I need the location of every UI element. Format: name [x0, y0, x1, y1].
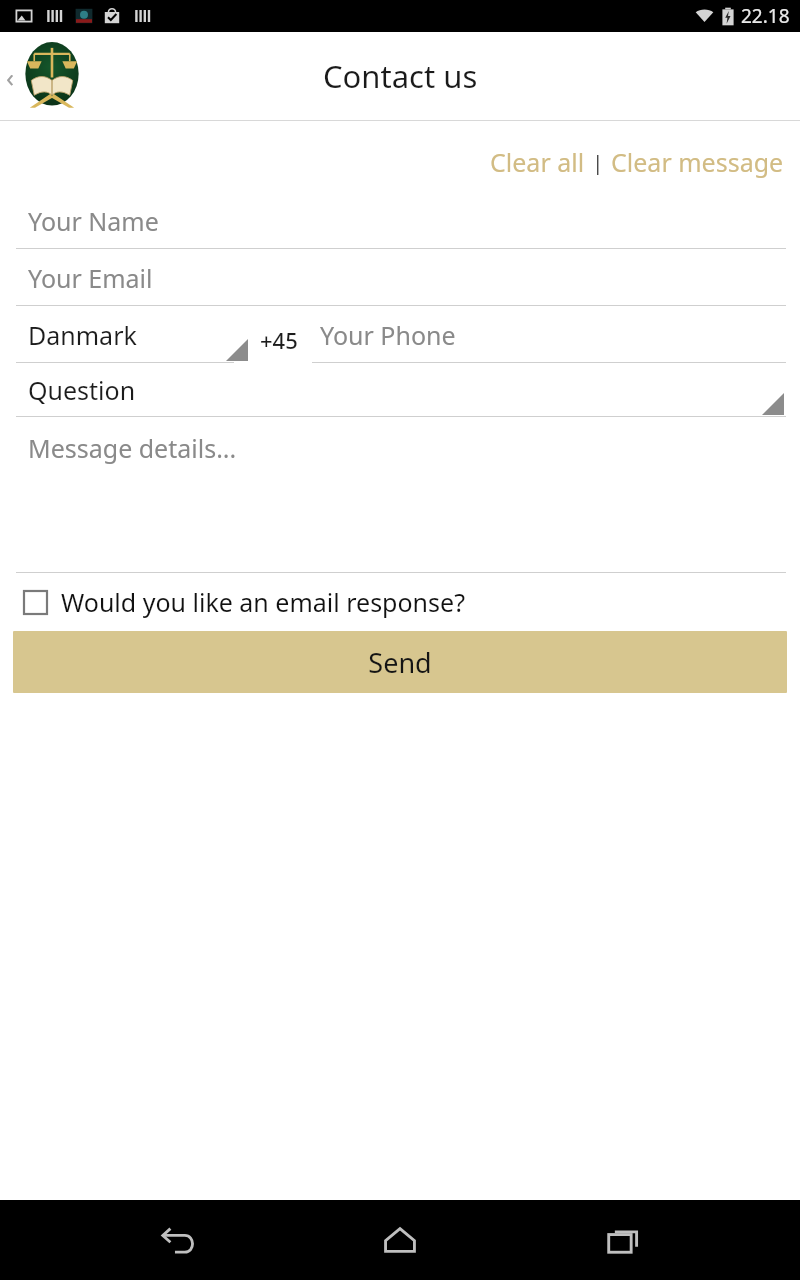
staticText: Your Name: [28, 204, 159, 238]
button[interactable]: Would you like an email response?: [24, 585, 800, 619]
staticText: Would you like an email response?: [61, 585, 465, 619]
staticText: Send: [368, 644, 432, 681]
button[interactable]: Your Phone: [312, 311, 786, 363]
staticText: |: [587, 149, 609, 176]
button[interactable]: Your Name: [0, 197, 800, 249]
button[interactable]: Danmark: [0, 311, 250, 363]
staticText: Danmark: [28, 318, 137, 352]
button[interactable]: Your Email: [0, 254, 800, 306]
staticText: Your Phone: [320, 318, 456, 352]
staticText: 22.18: [741, 3, 790, 29]
button[interactable]: Clear message: [609, 141, 786, 183]
button[interactable]: Recent apps: [578, 1200, 668, 1280]
staticText: ‹: [6, 59, 15, 94]
staticText: +45: [260, 325, 298, 355]
button[interactable]: Home: [355, 1200, 445, 1280]
staticText: Your Email: [28, 261, 153, 295]
button[interactable]: Message details...: [0, 423, 800, 573]
button[interactable]: Question: [0, 367, 800, 417]
button[interactable]: Clear all: [488, 141, 587, 183]
staticText: Clear all: [490, 145, 585, 179]
button[interactable]: Send: [13, 631, 787, 693]
button[interactable]: Back: [0, 32, 96, 120]
staticText: Clear message: [611, 145, 784, 179]
staticText: Contact us: [323, 55, 478, 97]
staticText: Question: [28, 373, 136, 407]
button[interactable]: Back: [133, 1200, 223, 1280]
staticText: Message details...: [28, 431, 237, 465]
